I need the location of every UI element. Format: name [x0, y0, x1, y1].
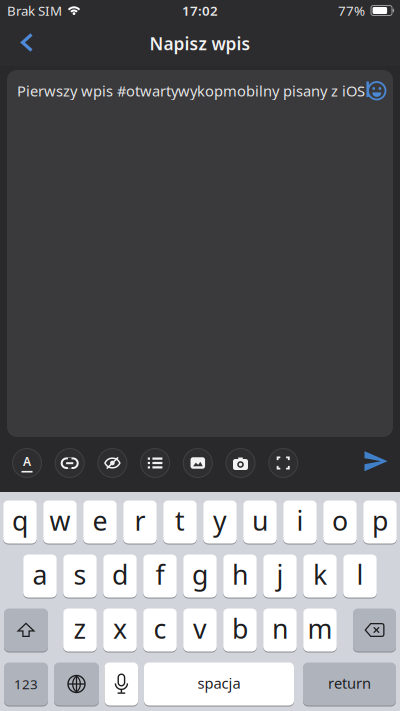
- button[interactable]: y: [203, 500, 237, 544]
- button[interactable]: w: [43, 500, 77, 544]
- staticText: return: [328, 673, 371, 693]
- button[interactable]: a: [23, 554, 57, 598]
- button[interactable]: Insert link: [55, 448, 84, 477]
- button[interactable]: Format text: [12, 448, 41, 477]
- staticText: p: [372, 503, 388, 538]
- staticText: z: [73, 611, 86, 646]
- staticText: x: [113, 611, 127, 646]
- button[interactable]: r: [123, 500, 157, 544]
- button[interactable]: t: [163, 500, 197, 544]
- button[interactable]: n: [263, 608, 297, 652]
- button[interactable]: Next keyboard: [54, 662, 99, 706]
- button[interactable]: g: [183, 554, 217, 598]
- button[interactable]: u: [243, 500, 277, 544]
- button[interactable]: m: [303, 608, 337, 652]
- button[interactable]: Expand: [269, 448, 298, 477]
- button[interactable]: Delete: [353, 608, 396, 652]
- staticText: 17:02: [182, 2, 218, 19]
- button[interactable]: Insert list: [141, 448, 170, 477]
- button[interactable]: l: [343, 554, 377, 598]
- button[interactable]: Emoticons: [363, 77, 391, 105]
- button[interactable]: k: [303, 554, 337, 598]
- button[interactable]: Return: [303, 662, 396, 706]
- staticText: r: [134, 503, 145, 538]
- button[interactable]: o: [323, 500, 357, 544]
- button[interactable]: z: [63, 608, 97, 652]
- staticText: s: [73, 557, 86, 592]
- button[interactable]: b: [223, 608, 257, 652]
- button[interactable]: v: [183, 608, 217, 652]
- button[interactable]: Send: [354, 441, 397, 481]
- button[interactable]: s: [63, 554, 97, 598]
- staticText: y: [213, 503, 227, 538]
- staticText: Napisz wpis: [149, 32, 250, 55]
- button[interactable]: Space: [144, 662, 294, 706]
- staticText: c: [153, 611, 166, 646]
- staticText: spacja: [197, 673, 240, 693]
- staticText: a: [32, 557, 47, 592]
- staticText: o: [332, 503, 348, 538]
- button[interactable]: h: [223, 554, 257, 598]
- button[interactable]: f: [143, 554, 177, 598]
- staticText: A: [23, 453, 31, 469]
- staticText: i: [296, 503, 303, 538]
- button[interactable]: Add image: [183, 448, 212, 477]
- button[interactable]: Dictate: [105, 662, 138, 706]
- staticText: t: [175, 503, 185, 538]
- staticText: w: [49, 503, 70, 538]
- button[interactable]: j: [263, 554, 297, 598]
- staticText: j: [276, 557, 283, 592]
- staticText: l: [356, 557, 363, 592]
- button[interactable]: Back: [0, 21, 52, 66]
- button[interactable]: e: [83, 500, 117, 544]
- staticText: 77%: [338, 2, 365, 19]
- staticText: v: [193, 611, 207, 646]
- staticText: n: [272, 611, 288, 646]
- staticText: h: [232, 557, 248, 592]
- button[interactable]: d: [103, 554, 137, 598]
- staticText: e: [92, 503, 107, 538]
- button[interactable]: Shift: [4, 608, 48, 652]
- staticText: u: [252, 503, 268, 538]
- staticText: Pierwszy wpis #otwartywykopmobilny pisan…: [17, 81, 365, 100]
- staticText: g: [192, 557, 208, 592]
- staticText: 123: [14, 675, 38, 693]
- button[interactable]: Numbers: [4, 662, 48, 706]
- button[interactable]: p: [363, 500, 397, 544]
- button[interactable]: Take photo: [226, 448, 255, 477]
- staticText: f: [155, 557, 164, 592]
- button[interactable]: Spoiler: [98, 448, 127, 477]
- staticText: q: [12, 503, 28, 538]
- button[interactable]: x: [103, 608, 137, 652]
- staticText: b: [232, 611, 248, 646]
- staticText: Brak SIM: [7, 2, 62, 19]
- button[interactable]: c: [143, 608, 177, 652]
- staticText: m: [307, 611, 332, 646]
- staticText: d: [112, 557, 128, 592]
- staticText: k: [313, 557, 327, 592]
- button[interactable]: i: [283, 500, 317, 544]
- button[interactable]: q: [3, 500, 37, 544]
